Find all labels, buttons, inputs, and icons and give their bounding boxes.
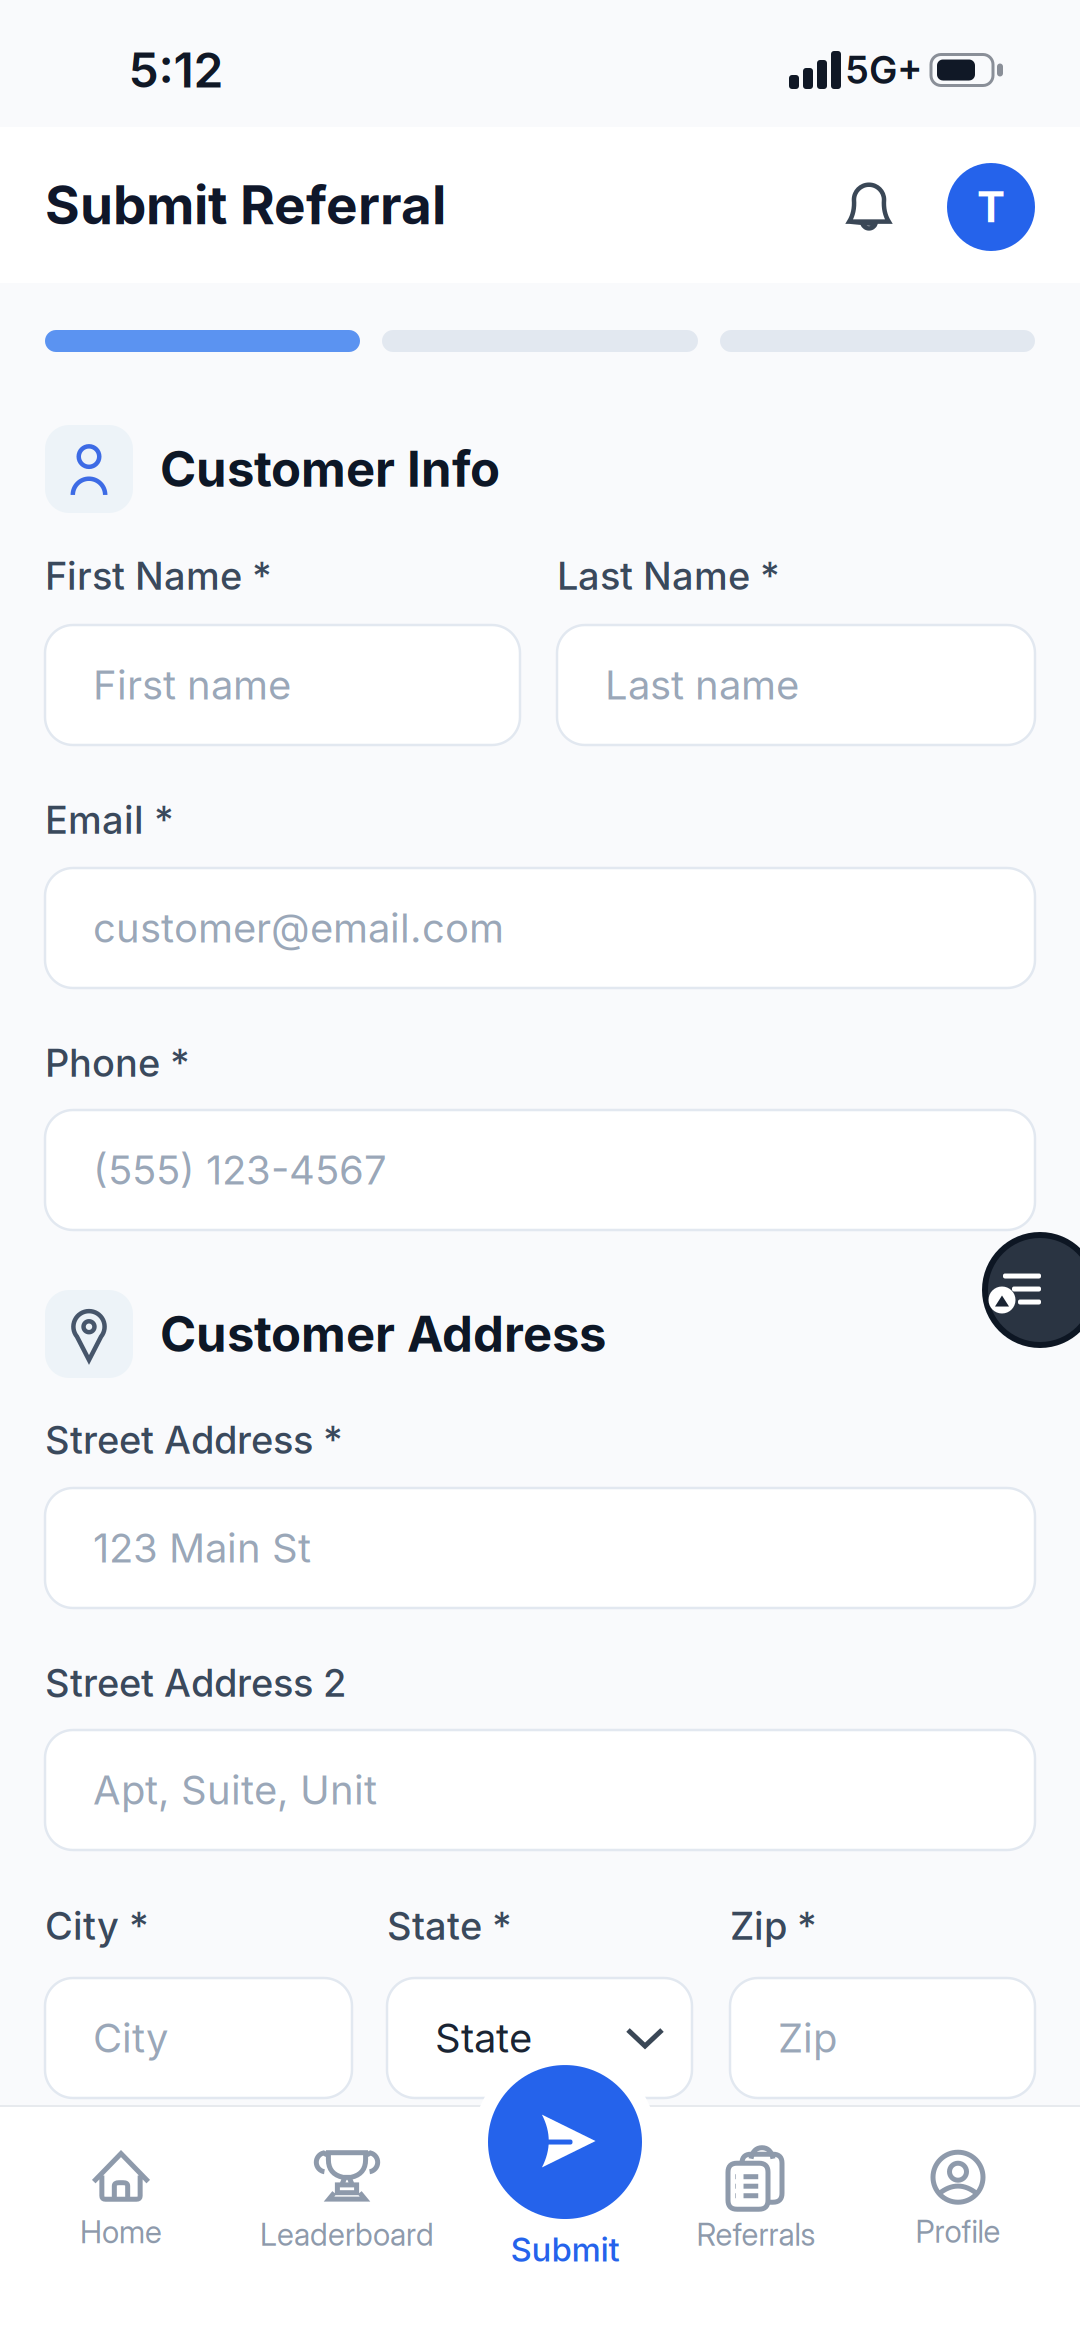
staticText: First Name * — [45, 554, 272, 598]
staticText: State * — [387, 1904, 512, 1948]
staticText: 5:12 — [128, 42, 223, 98]
button[interactable]: customer@email.com — [45, 868, 1035, 988]
button[interactable]: Zip — [730, 1978, 1035, 2098]
button[interactable]: Apt, Suite, Unit — [45, 1730, 1035, 1850]
staticText: Street Address 2 — [45, 1661, 346, 1705]
staticText: customer@email.com — [93, 904, 504, 952]
button[interactable]: Submit — [488, 2065, 642, 2269]
button[interactable]: Profile — [915, 2150, 1000, 2250]
button[interactable]: 123 Main St — [45, 1488, 1035, 1608]
staticText: T — [977, 182, 1005, 232]
button[interactable]: Referrals — [696, 2147, 815, 2253]
staticText: 123 Main St — [93, 1524, 311, 1572]
button[interactable]: Accessibility menu — [985, 1235, 1080, 1345]
staticText: Street Address * — [45, 1418, 343, 1462]
staticText: Submit — [510, 2230, 619, 2269]
button[interactable]: Profile — [947, 163, 1035, 251]
staticText: State — [435, 2014, 532, 2062]
button[interactable]: Home — [80, 2150, 162, 2250]
button[interactable]: (555) 123-4567 — [45, 1110, 1035, 1230]
staticText: Zip — [778, 2014, 837, 2062]
staticText: Profile — [915, 2213, 1000, 2250]
staticText: First name — [93, 661, 291, 709]
staticText: (555) 123-4567 — [93, 1146, 387, 1194]
staticText: Email * — [45, 798, 174, 842]
staticText: Zip * — [730, 1904, 817, 1948]
staticText: Last Name * — [557, 554, 780, 598]
staticText: Leaderboard — [260, 2216, 434, 2253]
staticText: Submit Referral — [45, 174, 446, 236]
button[interactable]: First name — [45, 625, 520, 745]
staticText: Apt, Suite, Unit — [93, 1766, 377, 1814]
staticText: City * — [45, 1904, 149, 1948]
staticText: Phone * — [45, 1041, 190, 1085]
button[interactable]: Leaderboard — [260, 2149, 434, 2253]
staticText: Home — [80, 2214, 162, 2250]
staticText: Last name — [605, 661, 799, 709]
staticText: Customer Address — [160, 1305, 606, 1363]
button[interactable]: City — [45, 1978, 352, 2098]
staticText: City — [93, 2014, 168, 2062]
button[interactable]: Last name — [557, 625, 1035, 745]
button[interactable]: State — [387, 1978, 692, 2098]
staticText: Customer Info — [160, 440, 500, 498]
staticText: 5G+ — [845, 48, 923, 92]
staticText: Referrals — [696, 2216, 815, 2253]
button[interactable]: Notifications — [845, 180, 892, 232]
